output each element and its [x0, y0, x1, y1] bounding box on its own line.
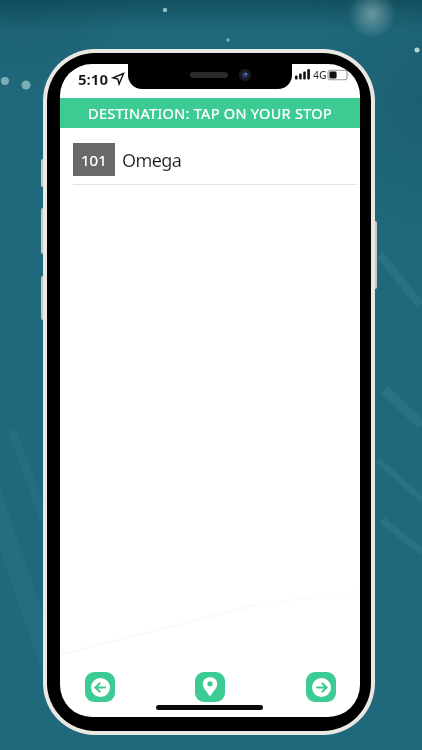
button[interactable] [85, 672, 115, 702]
staticText: 101 [81, 150, 107, 170]
staticText: Omega [122, 148, 182, 173]
button[interactable] [306, 672, 336, 702]
staticText: DESTINATION: TAP ON YOUR STOP [88, 103, 332, 123]
button[interactable] [195, 672, 225, 702]
staticText: 4G [313, 68, 327, 82]
staticText: 5:10 [78, 69, 108, 89]
button[interactable]: 101 [60, 135, 360, 184]
